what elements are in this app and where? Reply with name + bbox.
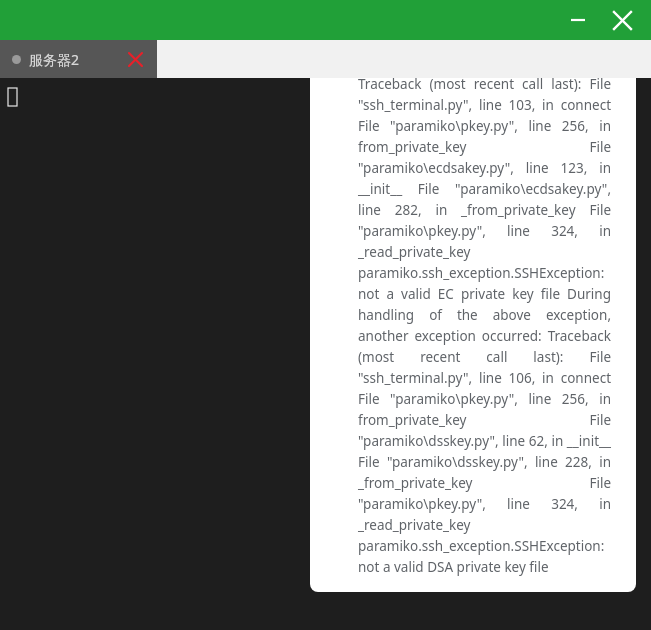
button[interactable]: Close xyxy=(603,1,641,39)
staticText: During handling of the above exception, … xyxy=(358,32,611,576)
button[interactable]: Minimize xyxy=(559,1,597,39)
button[interactable]: Close tab xyxy=(125,49,145,69)
button[interactable]: 服务器2 xyxy=(0,40,157,78)
staticText: 服务器2 xyxy=(29,50,80,69)
